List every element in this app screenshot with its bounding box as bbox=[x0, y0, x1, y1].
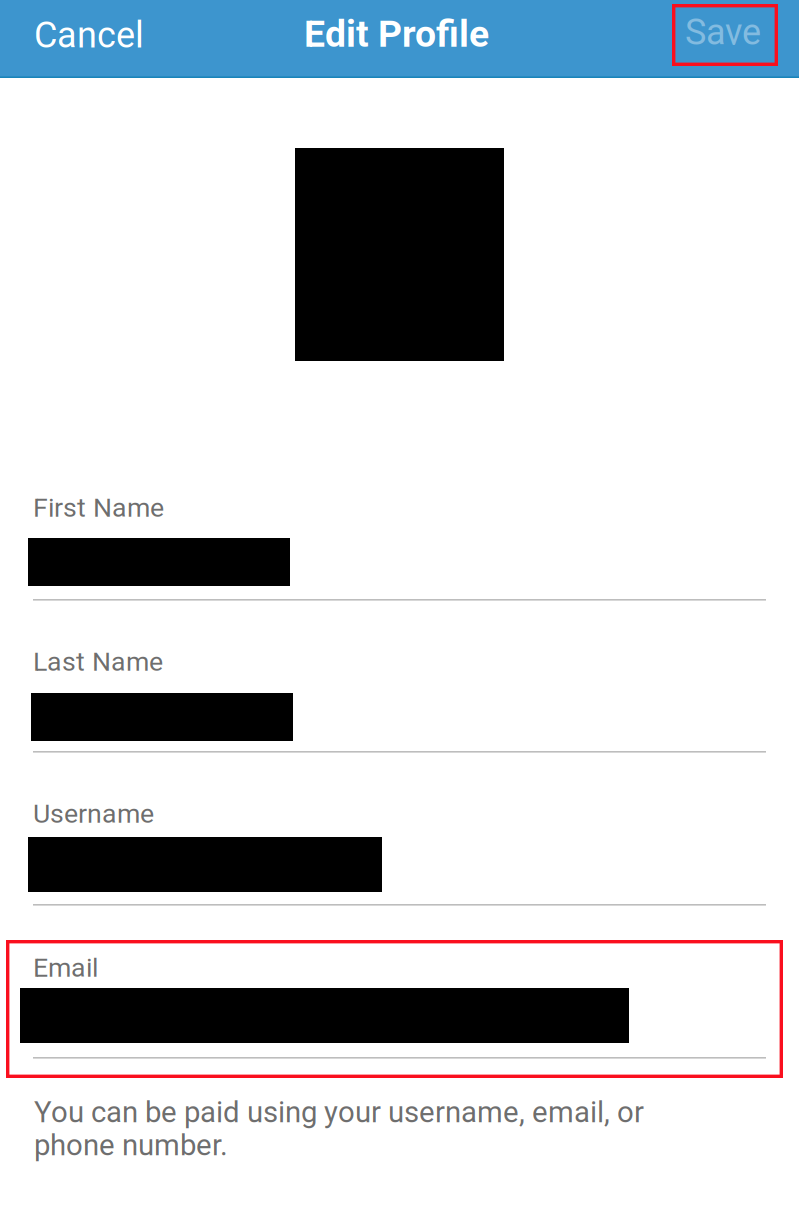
staticText: You can be paid using your username, ema… bbox=[34, 1095, 644, 1129]
staticText: Last Name bbox=[33, 646, 163, 677]
button[interactable]: Save bbox=[672, 4, 778, 66]
staticText: Username bbox=[33, 798, 154, 829]
staticText: First Name bbox=[33, 492, 164, 523]
staticText: Cancel bbox=[34, 14, 144, 56]
staticText: phone number. bbox=[34, 1128, 228, 1162]
staticText: Edit Profile bbox=[304, 12, 489, 56]
button[interactable]: Username bbox=[2, 798, 766, 910]
button[interactable]: First Name bbox=[2, 492, 766, 604]
button[interactable]: Last Name bbox=[2, 646, 766, 758]
staticText: Email bbox=[33, 952, 98, 983]
staticText: Save bbox=[685, 11, 761, 53]
button[interactable]: Email bbox=[2, 952, 766, 1064]
button[interactable]: Cancel bbox=[0, 0, 176, 78]
